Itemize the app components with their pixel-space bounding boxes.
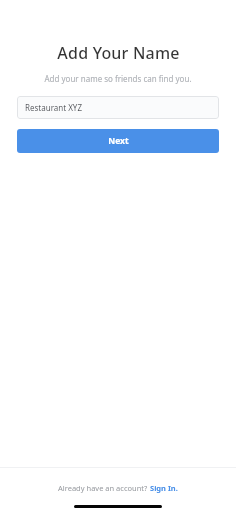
other: Home indicator — [74, 505, 162, 508]
staticText: Next — [108, 135, 129, 147]
staticText: Sign In. — [150, 483, 178, 493]
button[interactable]: Restaurant XYZ — [17, 96, 219, 119]
staticText: Add Your Name — [57, 42, 180, 64]
button[interactable]: Next — [17, 129, 219, 153]
staticText: Restaurant XYZ — [25, 102, 82, 113]
staticText: Add your name so friends can find you. — [44, 73, 192, 84]
staticText: Already have an account? — [58, 483, 150, 493]
button[interactable]: Already have an account? — [58, 483, 178, 493]
